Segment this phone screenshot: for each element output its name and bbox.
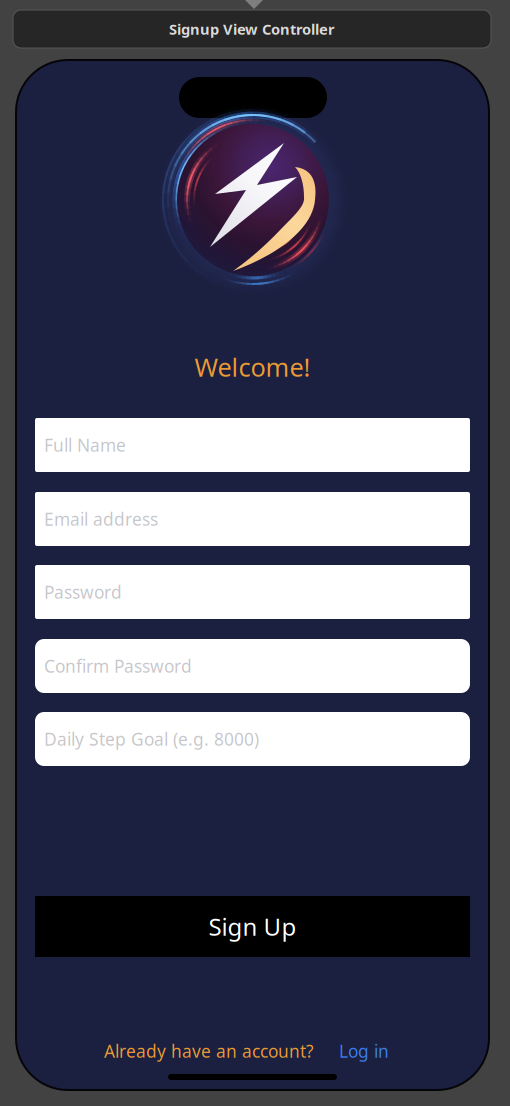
staticText: Confirm Password [44,654,192,677]
button[interactable]: Sign Up [35,896,470,957]
staticText: Log in [339,1039,389,1062]
staticText: Daily Step Goal (e.g. 8000) [44,727,259,750]
staticText: Welcome! [194,350,310,384]
button[interactable]: Email address [35,492,470,546]
staticText: Sign Up [208,911,296,942]
button[interactable]: Password [35,565,470,619]
staticText: Signup View Controller [169,19,335,39]
button[interactable]: Daily Step Goal (e.g. 8000) [35,712,470,766]
staticText: Full Name [44,433,126,456]
staticText: Already have an account? [104,1039,314,1062]
button[interactable]: Log in [314,1039,389,1062]
staticText: Email address [44,507,158,530]
staticText: Password [44,580,122,603]
button[interactable]: Full Name [35,418,470,472]
button[interactable]: Confirm Password [35,639,470,693]
button[interactable]: Signup View Controller [13,10,491,48]
